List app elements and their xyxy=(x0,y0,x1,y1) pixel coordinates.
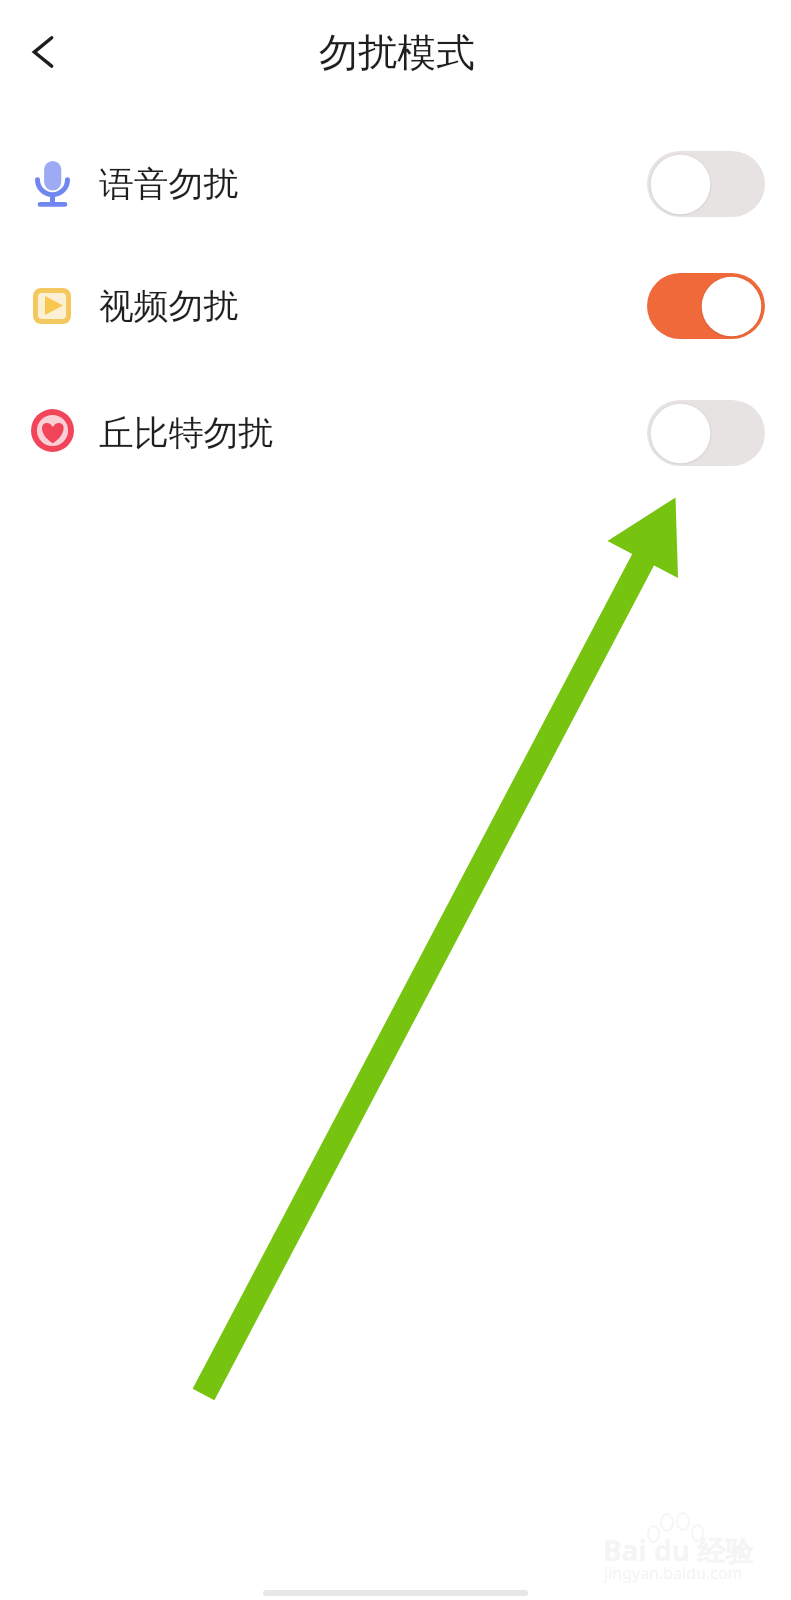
button[interactable]: Switch off xyxy=(647,151,765,217)
button[interactable]: 视频勿扰 xyxy=(0,266,791,346)
button[interactable]: Back xyxy=(16,24,72,80)
button[interactable]: Switch on xyxy=(647,273,765,339)
staticText: 丘比特勿扰 xyxy=(99,411,273,455)
staticText: 语音勿扰 xyxy=(99,162,239,206)
staticText: 视频勿扰 xyxy=(99,284,239,328)
staticText: 勿扰模式 xyxy=(319,28,475,77)
staticText: jingyan.baidu.com xyxy=(604,1562,743,1584)
button[interactable]: Switch off xyxy=(647,400,765,466)
staticText: Bai du 经验 xyxy=(603,1531,754,1569)
button[interactable]: 丘比特勿扰 xyxy=(0,393,791,473)
button[interactable]: 语音勿扰 xyxy=(0,144,791,224)
